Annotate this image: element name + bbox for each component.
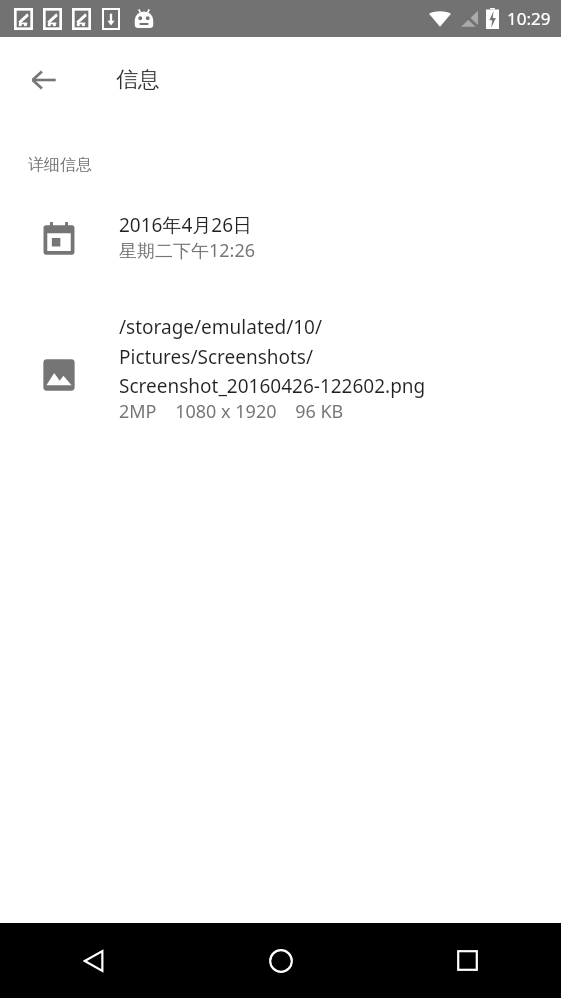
button[interactable]: Back (20, 56, 68, 104)
staticText: 10:29 (507, 7, 551, 30)
button[interactable]: 2016年4月26日 (0, 212, 561, 263)
staticText: 信息 (116, 66, 160, 94)
staticText: 星期二下午12:26 (119, 238, 256, 263)
staticText: 详细信息 (28, 155, 92, 175)
button[interactable]: Home (187, 923, 374, 998)
staticText: 2MP 1080 x 1920 96 KB (119, 399, 344, 424)
staticText: /storage/emulated/10/ Pictures/Screensho… (119, 314, 426, 399)
staticText: 2016年4月26日 (119, 212, 253, 238)
button[interactable]: /storage/emulated/10/ Pictures/Screensho… (0, 314, 561, 424)
button[interactable]: Back (0, 923, 187, 998)
button[interactable]: Recent apps (374, 923, 561, 998)
